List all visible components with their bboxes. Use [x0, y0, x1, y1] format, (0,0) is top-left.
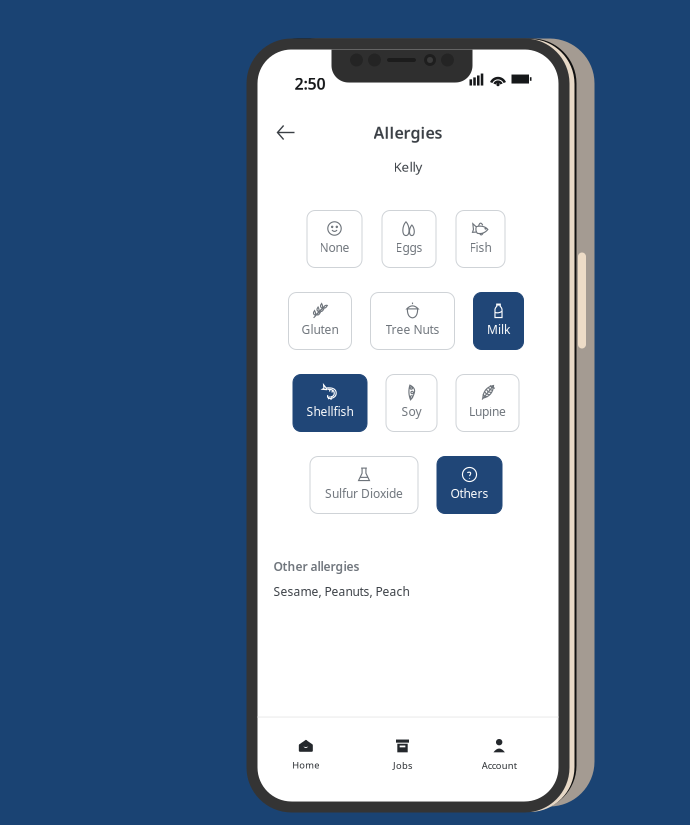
staticText: Eggs: [395, 239, 422, 255]
button[interactable]: Soy: [386, 374, 437, 431]
staticText: Jobs: [393, 759, 412, 772]
button[interactable]: Fish: [456, 210, 505, 267]
button[interactable]: Eggs: [382, 210, 436, 267]
staticText: Tree Nuts: [385, 321, 439, 337]
staticText: Account: [482, 759, 517, 772]
button[interactable]: Tree Nuts: [370, 292, 454, 349]
staticText: Fish: [469, 239, 491, 255]
staticText: Sesame, Peanuts, Peach: [273, 583, 409, 599]
staticText: Allergies: [373, 122, 442, 143]
button[interactable]: None: [307, 210, 362, 267]
staticText: Milk: [487, 321, 510, 337]
button[interactable]: Sulfur Dioxide: [310, 456, 418, 513]
button[interactable]: Shellfish: [293, 374, 367, 431]
staticText: Other allergies: [273, 558, 359, 574]
staticText: Sulfur Dioxide: [325, 485, 403, 501]
button[interactable]: Back: [271, 119, 300, 145]
staticText: Others: [450, 485, 488, 501]
button[interactable]: Milk: [473, 292, 523, 349]
staticText: 2:50: [294, 73, 325, 94]
staticText: None: [319, 239, 349, 255]
staticText: Home: [292, 759, 319, 771]
button[interactable]: Gluten: [288, 292, 351, 349]
staticText: Lupine: [469, 403, 506, 419]
staticText: Kelly: [393, 158, 422, 175]
staticText: Gluten: [301, 321, 338, 337]
button[interactable]: Account: [451, 713, 547, 780]
button[interactable]: Lupine: [456, 374, 519, 431]
button[interactable]: Jobs: [354, 713, 451, 780]
button[interactable]: Others: [437, 456, 502, 513]
staticText: Soy: [401, 403, 421, 419]
button[interactable]: Home: [257, 714, 354, 779]
staticText: Shellfish: [306, 403, 353, 419]
